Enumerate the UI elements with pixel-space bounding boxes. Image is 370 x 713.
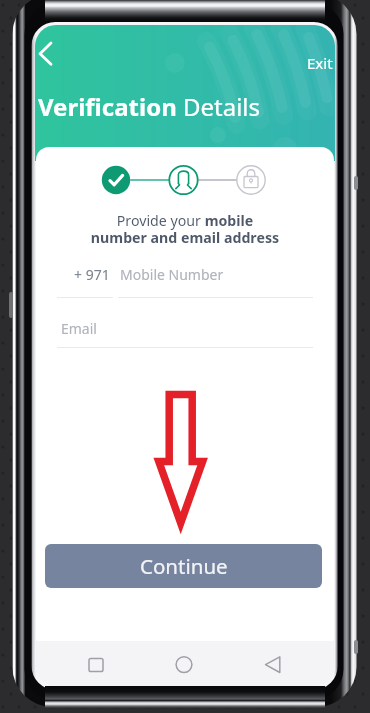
button[interactable]: Recents [79, 648, 113, 682]
staticText: Continue [140, 552, 228, 580]
button[interactable]: Home [167, 648, 201, 682]
button[interactable]: Back [35, 36, 65, 68]
staticText: Email [61, 319, 97, 338]
button[interactable]: Continue [45, 544, 322, 588]
button[interactable]: Back [256, 648, 290, 682]
staticText: Mobile Number [120, 265, 224, 284]
staticText: Exit [307, 53, 333, 73]
staticText: + 971 [74, 265, 110, 284]
staticText: Verification Details [38, 90, 261, 123]
staticText: Provide your mobile number and email add… [36, 211, 334, 248]
button[interactable]: Exit [307, 53, 333, 73]
